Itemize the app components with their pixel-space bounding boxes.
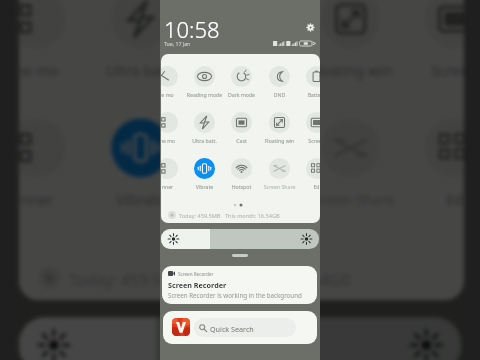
staticText: Battery: [298, 91, 320, 98]
staticText: This month: 16.54GB: [225, 212, 280, 220]
staticText: DND: [261, 91, 298, 98]
staticText: Floating win: [299, 60, 402, 79]
staticText: Cast: [192, 60, 296, 79]
staticText: Screen Recorder is working in the backgr…: [168, 291, 302, 299]
button[interactable]: Reading mode: [186, 66, 223, 97]
staticText: ne mo: [161, 137, 186, 144]
staticText: e mo: [161, 91, 186, 98]
staticText: Screen Recorder: [178, 271, 214, 277]
staticText: Floating win: [261, 137, 298, 144]
button[interactable]: e mo: [161, 66, 186, 97]
button[interactable]: Screen Recorder: [162, 266, 317, 304]
button[interactable]: Screen: [402, 0, 464, 76]
button[interactable]: Cast: [192, 0, 296, 76]
button[interactable]: Screen: [298, 112, 320, 143]
staticText: Screen Share: [299, 188, 402, 208]
button[interactable]: DND: [261, 66, 298, 97]
button[interactable]: Cast: [223, 112, 260, 143]
button[interactable]: Brightness: [19, 317, 461, 360]
button[interactable]: ne mo: [161, 112, 186, 143]
staticText: Quick Search: [210, 324, 254, 334]
staticText: nner: [161, 183, 186, 190]
button[interactable]: nner: [161, 158, 186, 189]
staticText: Vibrate: [186, 183, 223, 190]
staticText: Today: 459.5MB: [69, 270, 187, 292]
button[interactable]: Screen Share: [261, 158, 298, 189]
button[interactable]: Ultra batt.: [89, 0, 192, 76]
button[interactable]: Settings: [303, 20, 318, 35]
button[interactable]: ne mo: [19, 0, 89, 76]
staticText: Hotspot: [223, 183, 260, 190]
button[interactable]: Ed: [402, 118, 464, 205]
staticText: Cast: [223, 137, 260, 144]
staticText: Screen: [402, 60, 464, 79]
staticText: nner: [19, 188, 89, 208]
staticText: Ultra batt.: [89, 60, 192, 79]
button[interactable]: Floating win: [299, 0, 402, 76]
button[interactable]: Hotspot: [223, 158, 260, 189]
staticText: Screen Recorder: [168, 280, 227, 290]
staticText: Ed: [298, 183, 320, 190]
button[interactable]: Vibrate: [89, 118, 192, 205]
staticText: This month: 16.54GB: [198, 270, 352, 292]
button[interactable]: Vibrate: [186, 158, 223, 189]
staticText: Hotspot: [192, 188, 296, 208]
staticText: 10:58: [164, 14, 220, 44]
staticText: Reading mode: [186, 91, 223, 98]
button[interactable]: Floating win: [261, 112, 298, 143]
button[interactable]: Ed: [298, 158, 320, 189]
button[interactable]: Quick Search: [163, 311, 317, 344]
button[interactable]: Hotspot: [192, 118, 296, 205]
staticText: Screen: [298, 137, 320, 144]
staticText: Vibrate: [89, 188, 192, 208]
button[interactable]: Dark mode: [223, 66, 260, 97]
staticText: Tue, 17 Jan: [164, 40, 191, 47]
staticText: Today: 459.5MB: [179, 212, 221, 220]
staticText: Ed: [402, 188, 464, 208]
staticText: Screen Share: [261, 183, 298, 190]
button[interactable]: Ultra batt.: [186, 112, 223, 143]
staticText: ne mo: [19, 60, 89, 79]
staticText: Ultra batt.: [186, 137, 223, 144]
button[interactable]: nner: [19, 118, 89, 205]
button[interactable]: Brightness: [161, 229, 319, 249]
button[interactable]: Screen Share: [299, 118, 402, 205]
staticText: Dark mode: [223, 91, 260, 98]
button[interactable]: Battery: [298, 66, 320, 97]
